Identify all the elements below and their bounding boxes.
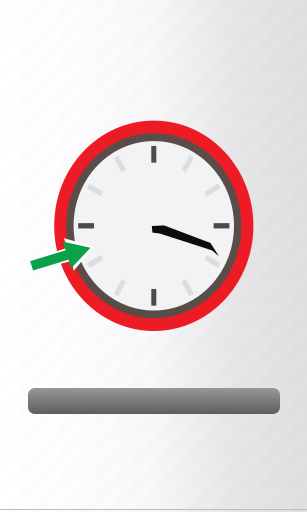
button[interactable]: Start timer bbox=[28, 388, 280, 414]
